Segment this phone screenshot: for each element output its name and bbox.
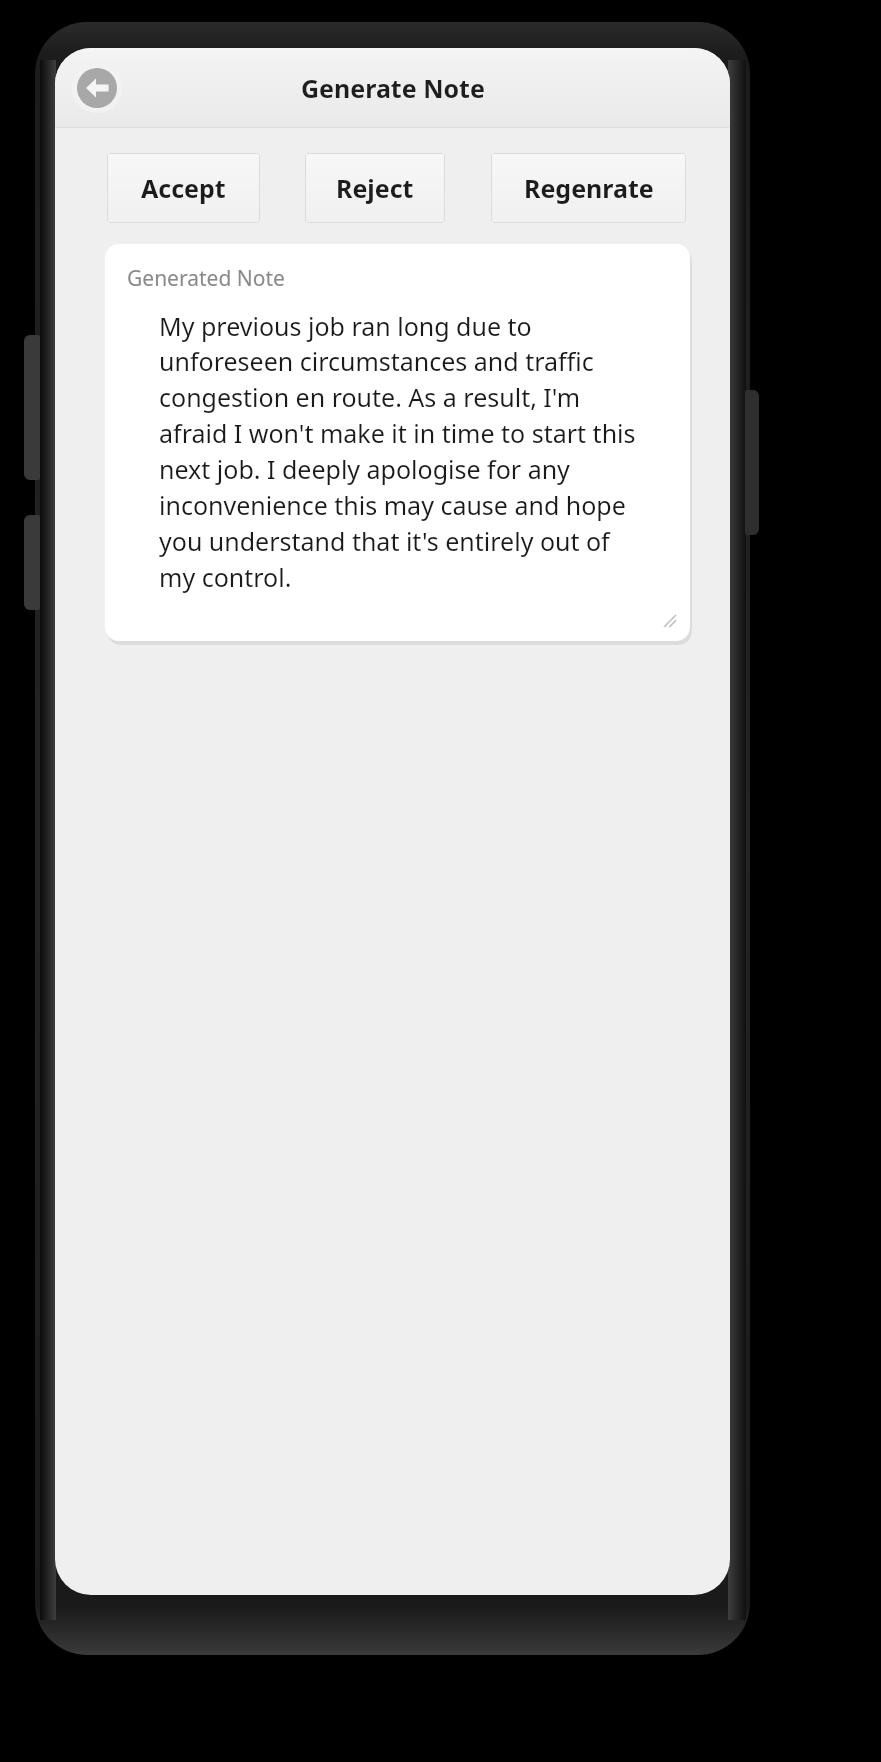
button[interactable]: Generated Note — [105, 244, 690, 641]
button[interactable]: Accept — [107, 153, 260, 223]
staticText: Generated Note — [127, 264, 285, 293]
button[interactable]: Regenrate — [491, 153, 686, 223]
staticText: My previous job ran long due to unforese… — [159, 309, 646, 595]
staticText: Regenrate — [524, 171, 654, 205]
button[interactable]: Reject — [305, 153, 445, 223]
staticText: Generate Note — [301, 71, 485, 105]
button[interactable]: Back — [70, 61, 124, 115]
staticText: Accept — [141, 171, 226, 205]
staticText: Reject — [336, 171, 414, 205]
